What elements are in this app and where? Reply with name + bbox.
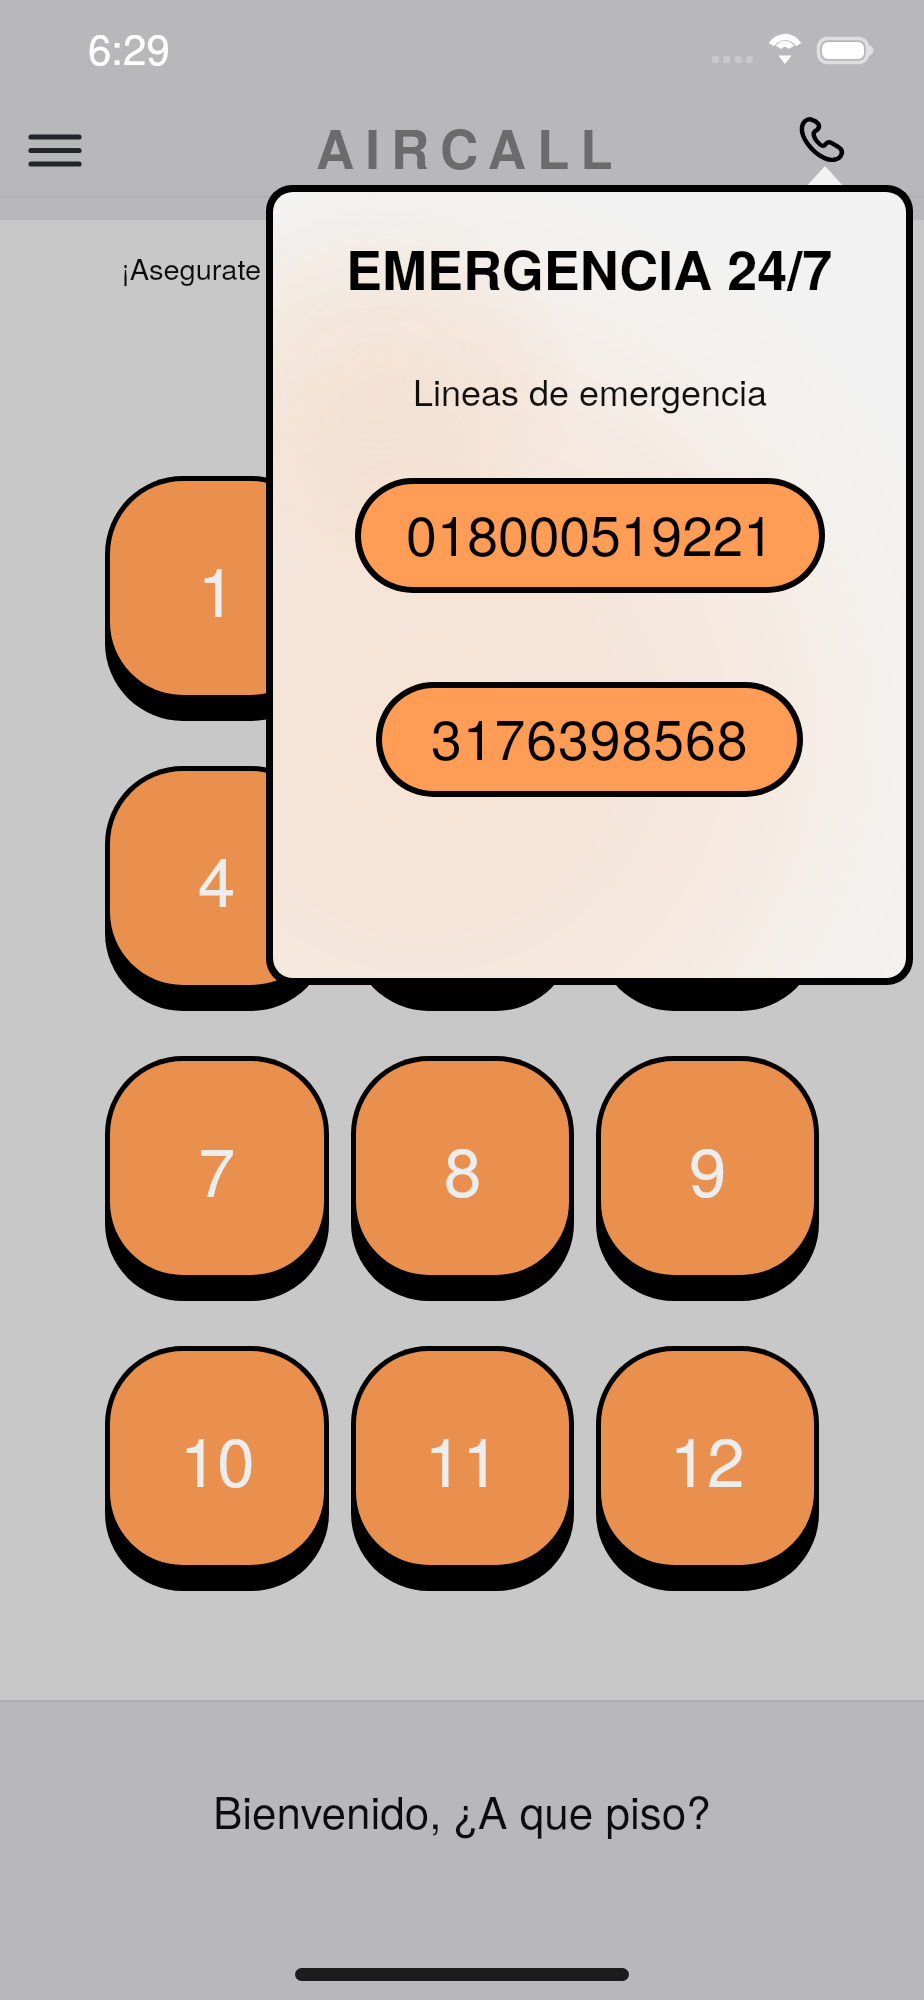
staticText: 6:29 (88, 17, 170, 77)
staticText: 12 (670, 1410, 745, 1506)
staticText: Bienvenido, ¿A que piso? (213, 1778, 711, 1841)
button[interactable]: 9 (596, 1056, 819, 1301)
staticText: AIRCALL (316, 109, 624, 185)
button[interactable]: 5 (351, 766, 574, 1011)
button[interactable]: 8 (351, 1056, 574, 1301)
staticText: 018000519221 (406, 492, 774, 571)
button[interactable]: 2 (351, 476, 574, 721)
button[interactable]: 3 (596, 476, 819, 721)
button[interactable]: 6 (596, 766, 819, 1011)
button[interactable]: 4 (105, 766, 329, 1011)
button[interactable]: 3176398568 (376, 682, 803, 797)
staticText: 9 (689, 1120, 727, 1216)
staticText: EMERGENCIA 24/7 (346, 229, 833, 306)
staticText: 7 (198, 1120, 236, 1216)
staticText: 8 (444, 1120, 482, 1216)
staticText: ¡Asegurate de que el piso seleccionado s… (0, 247, 924, 289)
button[interactable]: Emergency call (783, 108, 861, 186)
staticText: 10 (180, 1410, 255, 1506)
button[interactable]: 018000519221 (355, 478, 825, 593)
button[interactable]: 10 (105, 1346, 329, 1591)
staticText: 3176398568 (431, 696, 749, 775)
button[interactable]: 1 (105, 476, 329, 721)
staticText: 2 (444, 540, 482, 636)
button[interactable]: Open menu (19, 111, 91, 183)
staticText: 3 (689, 540, 727, 636)
button[interactable]: 7 (105, 1056, 329, 1301)
staticText: 1 (198, 540, 236, 636)
staticText: 4 (198, 830, 236, 926)
button[interactable]: 12 (596, 1346, 819, 1591)
staticText: 11 (425, 1410, 500, 1506)
staticText: Lineas de emergencia (413, 365, 767, 417)
button[interactable]: 11 (351, 1346, 574, 1591)
